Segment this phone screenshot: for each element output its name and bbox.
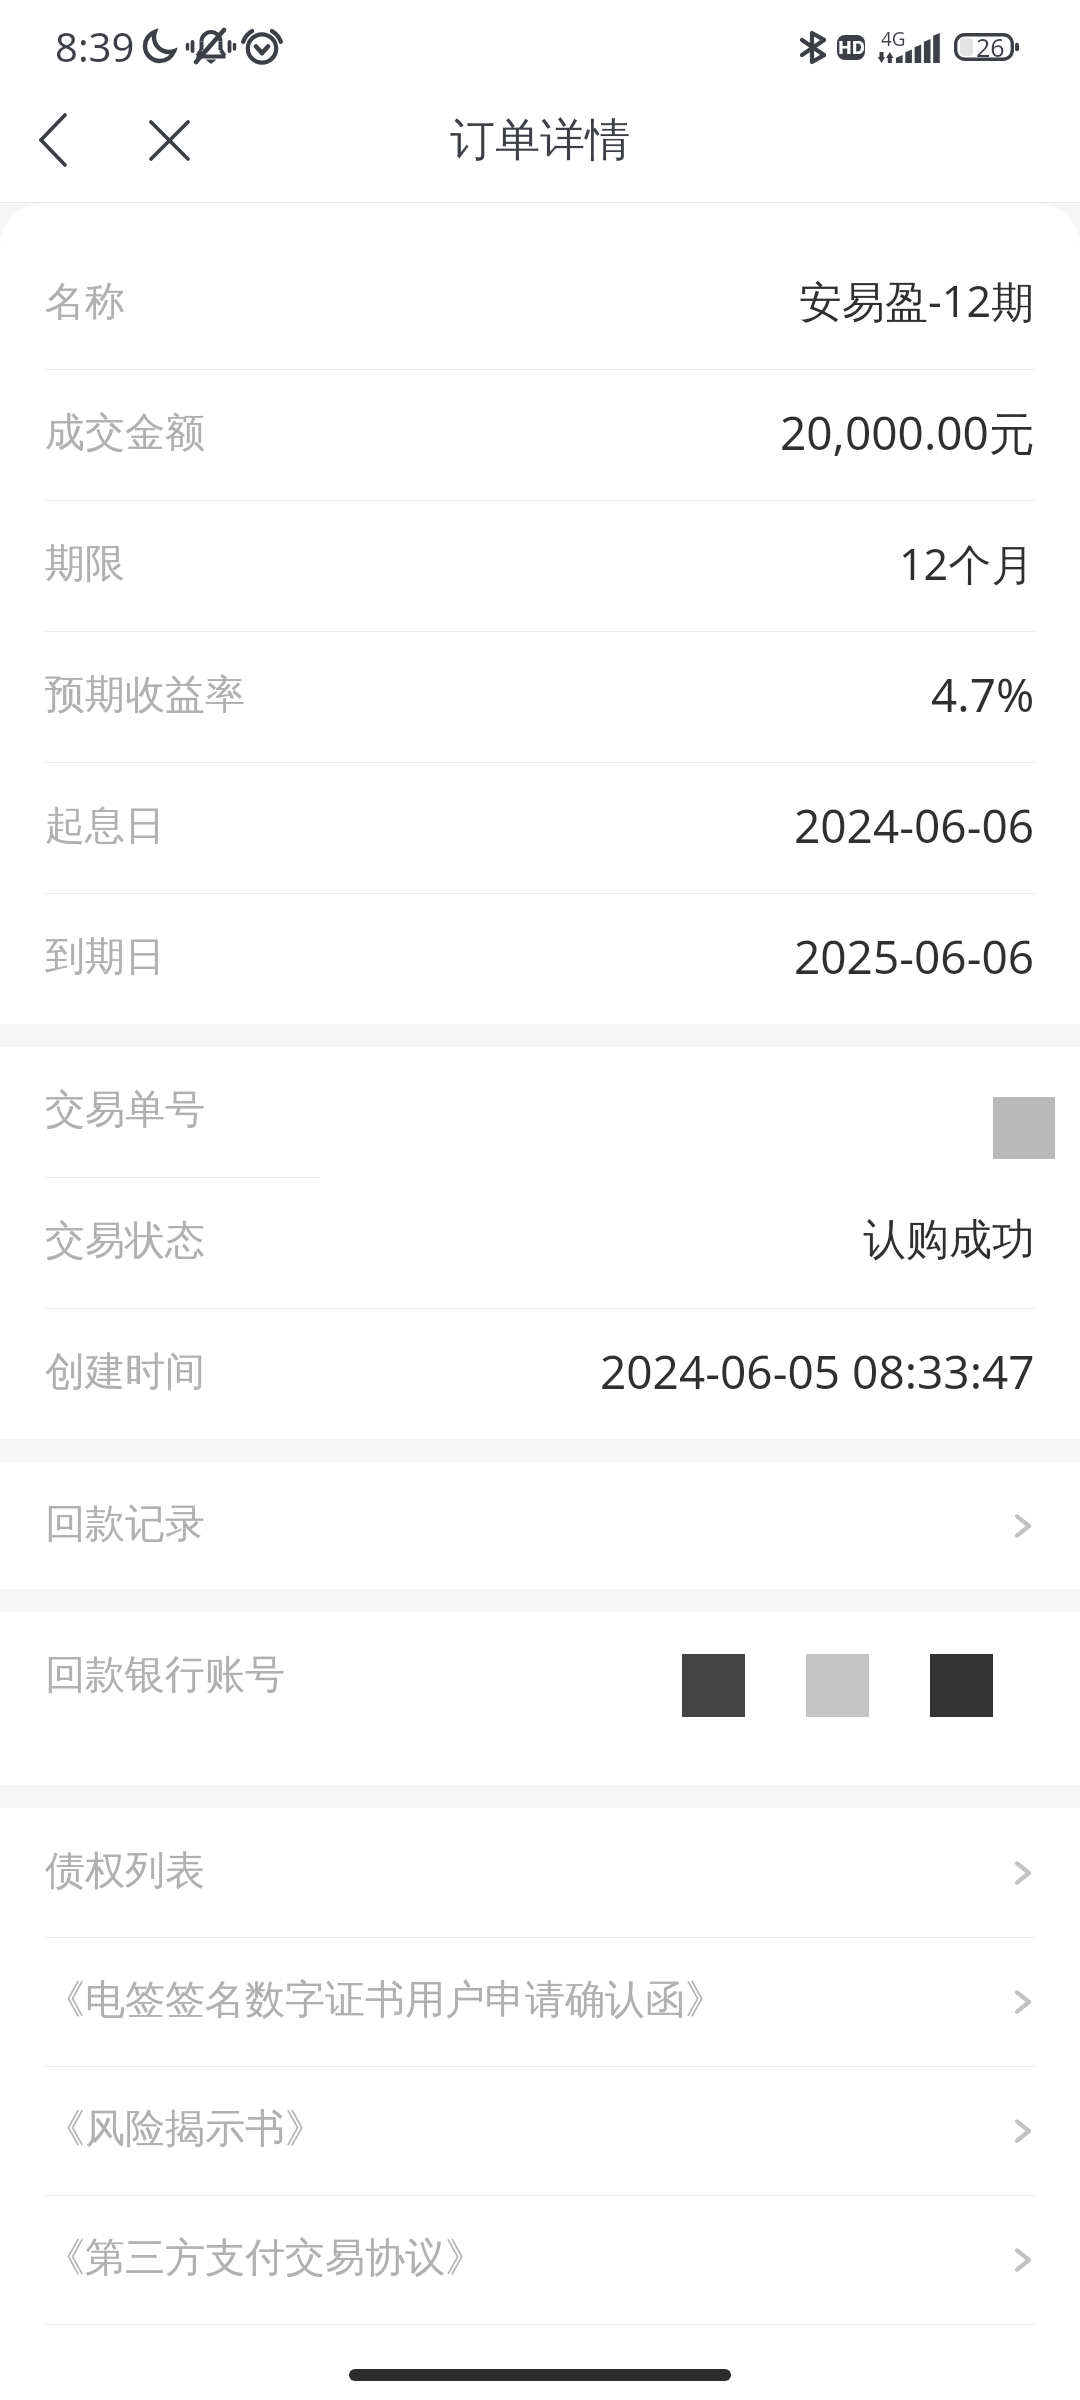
staticText: 《电签签名数字证书用户申请确认函》 [45, 1974, 725, 2024]
staticText: 2024-06-06 [794, 794, 1035, 857]
staticText: 交易状态 [45, 1215, 205, 1265]
staticText: 2025-06-06 [794, 925, 1035, 988]
staticText: 12个月 [899, 534, 1035, 593]
staticText: 8:39 [55, 19, 135, 73]
staticText: 26 [976, 30, 1005, 64]
button[interactable]: Back [14, 101, 92, 179]
button[interactable]: 交易状态 [0, 1178, 1080, 1308]
button[interactable]: 预期收益率 [0, 632, 1080, 762]
button[interactable]: Close [130, 101, 208, 179]
staticText: 《风险揭示书》 [45, 2103, 325, 2153]
staticText: 债权列表 [45, 1845, 205, 1895]
button[interactable]: 名称 [0, 238, 1080, 369]
staticText: 2024-06-05 08:33:47 [600, 1340, 1035, 1403]
staticText: 起息日 [45, 800, 165, 850]
button[interactable]: 《风险揭示书》 [0, 2067, 1080, 2195]
staticText: 交易单号 [45, 1084, 205, 1134]
button[interactable]: 到期日 [0, 894, 1080, 1024]
button[interactable]: 创建时间 [0, 1309, 1080, 1439]
button[interactable]: 成交金额 [0, 370, 1080, 500]
button[interactable]: 《第三方支付交易协议》 [0, 2196, 1080, 2324]
staticText: HD [838, 35, 865, 60]
staticText: 预期收益率 [45, 669, 245, 719]
staticText: 4G [881, 26, 906, 52]
staticText: 到期日 [45, 931, 165, 981]
button[interactable]: 《电签签名数字证书用户申请确认函》 [0, 1938, 1080, 2066]
staticText: 成交金额 [45, 407, 205, 457]
staticText: 创建时间 [45, 1346, 205, 1396]
staticText: 回款记录 [45, 1498, 205, 1548]
button[interactable]: 交易单号 [0, 1047, 1080, 1177]
button[interactable]: 起息日 [0, 763, 1080, 893]
staticText: 安易盈-12期 [799, 271, 1035, 330]
staticText: 回款银行账号 [45, 1649, 285, 1699]
staticText: 认购成功 [863, 1213, 1035, 1267]
staticText: 订单详情 [450, 112, 630, 169]
button[interactable]: 债权列表 [0, 1808, 1080, 1937]
button[interactable]: 期限 [0, 501, 1080, 631]
staticText: 期限 [45, 538, 125, 588]
button[interactable]: 回款记录 [0, 1462, 1080, 1589]
staticText: 20,000.00元 [780, 401, 1035, 464]
staticText: 4.7% [931, 663, 1035, 726]
staticText: 《第三方支付交易协议》 [45, 2232, 485, 2282]
button[interactable]: 回款银行账号 [0, 1612, 1080, 1785]
staticText: 名称 [45, 276, 125, 326]
